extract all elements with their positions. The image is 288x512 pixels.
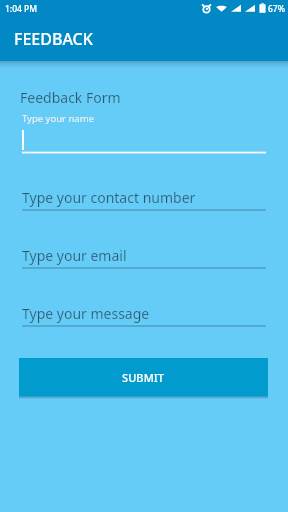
button[interactable]: Type your name bbox=[0, 108, 288, 154]
staticText: Type your name bbox=[22, 112, 94, 125]
staticText: SUBMIT bbox=[122, 370, 165, 385]
button[interactable]: Type your contact number bbox=[0, 190, 288, 212]
staticText: 67% bbox=[268, 3, 285, 15]
staticText: Type your contact number bbox=[22, 188, 196, 207]
staticText: FEEDBACK bbox=[14, 28, 93, 50]
button[interactable]: SUBMIT bbox=[19, 358, 268, 396]
staticText: Type your email bbox=[22, 246, 127, 265]
button[interactable]: FEEDBACK bbox=[0, 20, 288, 61]
staticText: 1:04 PM bbox=[5, 3, 38, 15]
button[interactable]: Type your message bbox=[0, 306, 288, 328]
button[interactable]: Type your email bbox=[0, 248, 288, 270]
staticText: Type your message bbox=[22, 304, 150, 323]
staticText: Feedback Form bbox=[20, 88, 121, 107]
